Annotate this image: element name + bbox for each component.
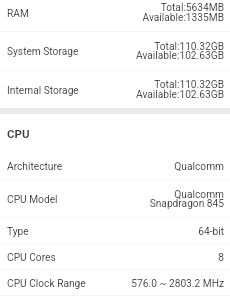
staticText: 8 xyxy=(218,252,224,264)
button[interactable]: CPU Model xyxy=(0,180,230,218)
staticText: 576.0 ~ 2803.2 MHz xyxy=(131,278,224,290)
button[interactable]: CPU Cores xyxy=(0,244,230,270)
staticText: Total:110.32GB xyxy=(154,41,224,53)
button[interactable]: Architecture xyxy=(0,154,230,180)
staticText: CPU xyxy=(7,127,30,140)
staticText: CPU Clock Range xyxy=(7,278,86,290)
staticText: CPU Model xyxy=(7,194,58,206)
staticText: RAM xyxy=(7,8,29,20)
button[interactable]: System Storage xyxy=(0,32,230,71)
staticText: Total:110.32GB xyxy=(154,79,224,91)
staticText: Internal Storage xyxy=(7,85,79,97)
staticText: Available:102.63GB xyxy=(136,89,224,101)
staticText: Type xyxy=(7,226,29,238)
staticText: CPU Cores xyxy=(7,252,56,264)
staticText: Total:5634MB xyxy=(160,2,224,14)
staticText: System Storage xyxy=(7,46,79,58)
staticText: Available:102.63GB xyxy=(136,50,224,62)
button[interactable]: CPU Clock Range xyxy=(0,270,230,296)
staticText: Qualcomm xyxy=(174,161,224,173)
staticText: Available:1335MB xyxy=(142,12,224,24)
staticText: Snapdragon 845 xyxy=(149,198,224,210)
button[interactable]: Type xyxy=(0,218,230,244)
staticText: 64-bit xyxy=(198,226,224,238)
staticText: Architecture xyxy=(7,161,63,173)
button[interactable]: RAM xyxy=(0,0,230,32)
button[interactable]: Internal Storage xyxy=(0,71,230,108)
staticText: Qualcomm xyxy=(174,189,224,201)
